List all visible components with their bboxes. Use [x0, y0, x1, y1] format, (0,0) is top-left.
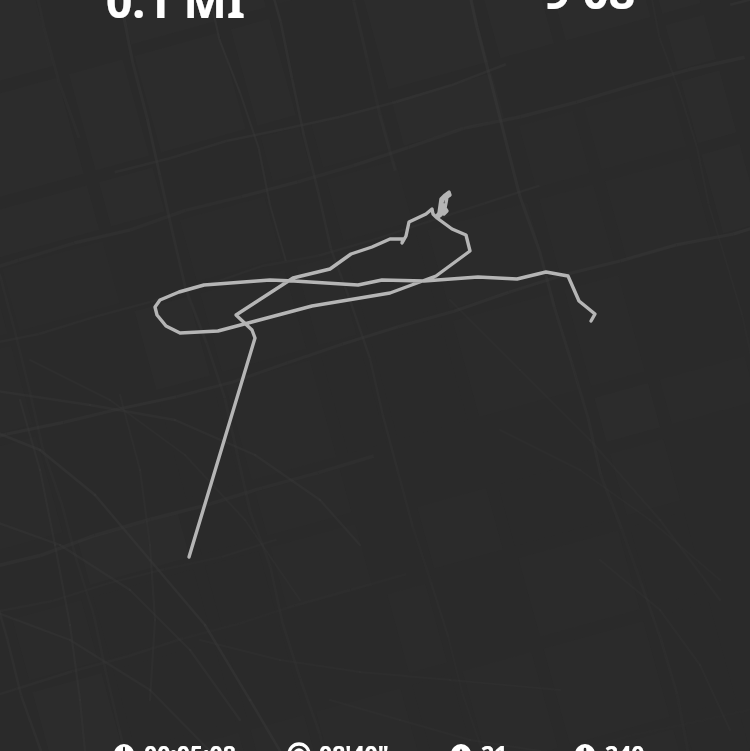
staticText: 9'08": [544, 0, 658, 23]
staticText: 240: [605, 738, 645, 751]
button[interactable]: Elevation: [451, 744, 478, 751]
staticText: 08'40": [319, 738, 389, 751]
staticText: 0.1 MI: [106, 0, 245, 32]
staticText: 00:05:08: [144, 738, 236, 751]
button[interactable]: Run route map: [0, 0, 750, 751]
button[interactable]: Duration: [114, 744, 206, 751]
button[interactable]: Calories: [575, 744, 615, 751]
button[interactable]: Pace: [289, 744, 359, 751]
staticText: 21: [481, 738, 508, 751]
